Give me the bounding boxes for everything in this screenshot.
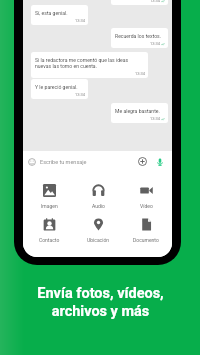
button[interactable]: Adjuntar [138,157,147,166]
staticText: Ubicación [87,237,110,243]
button[interactable]: Si la redactora me comentó que las ideas… [31,52,148,78]
button[interactable]: Ubicación [76,218,120,243]
staticText: 13:34 [75,92,85,97]
staticText: 13:34 [150,116,160,121]
button[interactable]: Vídeo [124,184,168,209]
button[interactable]: Mensaje de voz [155,157,165,167]
staticText: Contacto [39,237,60,243]
staticText: Envía fotos, vídeos, archivos y más [37,285,164,319]
button[interactable]: Sí, esta genial. [31,5,88,25]
button[interactable]: Audio [76,184,120,209]
staticText: 13:34 [75,18,85,23]
staticText: Documento [133,237,159,243]
staticText: Imagen [41,203,58,209]
button[interactable]: Imagen [27,184,71,209]
button[interactable]: Me alegra bastante. [111,103,168,123]
staticText: Escribe tu mensaje [40,159,87,165]
staticText: Si la redactora me comentó que las ideas… [35,57,145,69]
staticText: Me alegra bastante. [115,108,165,114]
staticText: 13:34 [150,41,160,46]
button[interactable]: Documento [124,218,168,243]
button[interactable]: Emoji [28,158,36,166]
button[interactable]: Recuerda los textos. [111,28,168,48]
button[interactable]: Y le pareció genial. [31,79,88,99]
staticText: 13:34 [150,0,160,3]
staticText: Sí, esta genial. [35,10,85,16]
staticText: 13:34 [135,71,145,76]
button[interactable]: Contacto [27,218,71,243]
staticText: Vídeo [140,203,153,209]
staticText: Audio [92,203,105,209]
button[interactable]: Claro. [111,0,168,5]
staticText: Y le pareció genial. [35,84,85,90]
staticText: Recuerda los textos. [115,33,165,39]
